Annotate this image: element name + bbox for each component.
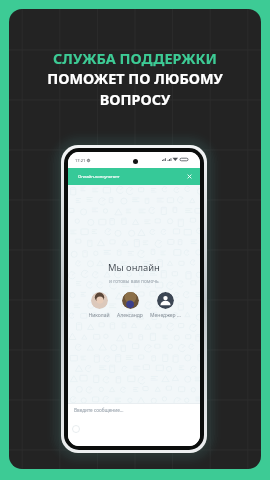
staticText: Онлайн-консультант [78,174,120,180]
staticText: 17:21 [75,158,86,163]
staticText: Николай [88,312,110,319]
button[interactable]: Александр [117,292,143,319]
staticText: Введите сообщение... [74,407,124,413]
staticText: и готовы вам помочь [109,278,159,285]
button[interactable]: Введите сообщение... [68,404,200,416]
staticText: СЛУЖБА ПОДДЕРЖКИ [53,49,217,69]
button[interactable]: Эмодзи [72,425,80,433]
staticText: ПОМОЖЕТ ПО ЛЮБОМУ ВОПРОСУ [47,69,223,109]
staticText: Александр [117,312,143,319]
button[interactable]: Николай [88,292,110,319]
staticText: Мы онлайн [108,261,160,274]
staticText: Менеджер ... [150,312,181,319]
button[interactable]: Менеджер ... [150,292,181,319]
button[interactable]: Закрыть [185,172,194,181]
